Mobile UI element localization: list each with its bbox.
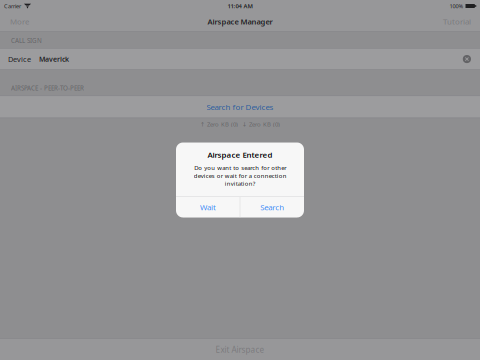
staticText: Wait bbox=[200, 202, 216, 212]
staticText: ↑ Zero KB (0) ↓ Zero KB (0) bbox=[200, 120, 280, 128]
staticText: Search for Devices bbox=[206, 102, 273, 112]
button[interactable]: Search bbox=[240, 197, 304, 217]
staticText: Airspace Entered bbox=[207, 149, 272, 160]
button[interactable]: Wait bbox=[176, 197, 240, 217]
staticText: Maverick bbox=[39, 54, 69, 64]
staticText: 11:04 AM bbox=[227, 2, 252, 10]
button[interactable]: Clear device name bbox=[463, 55, 471, 63]
staticText: Do you want to search for other devices … bbox=[193, 164, 286, 187]
staticText: Tutorial bbox=[443, 16, 471, 27]
staticText: More bbox=[10, 16, 29, 27]
staticText: Airspace Manager bbox=[207, 16, 272, 27]
staticText: Carrier bbox=[4, 2, 21, 10]
staticText: Search bbox=[260, 202, 284, 212]
staticText: 100% bbox=[449, 2, 463, 10]
button[interactable]: More bbox=[0, 12, 39, 31]
staticText: AIRSPACE - PEER-TO-PEER bbox=[11, 84, 84, 92]
staticText: Device bbox=[8, 54, 31, 64]
button[interactable]: Search for Devices bbox=[0, 96, 480, 118]
staticText: CALL SIGN bbox=[11, 36, 42, 45]
staticText: Exit Airspace bbox=[215, 344, 264, 355]
button[interactable]: Tutorial bbox=[434, 12, 480, 31]
